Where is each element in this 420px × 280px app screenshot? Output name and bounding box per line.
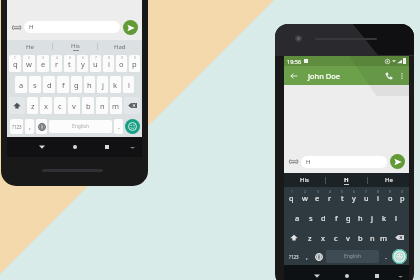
button[interactable]: ?123 [287,249,300,264]
button[interactable]: Back [311,265,323,280]
button[interactable]: v [68,97,80,114]
button[interactable]: Hide keyboard [126,137,138,157]
button[interactable]: l [123,76,134,93]
staticText: z [308,233,312,243]
button[interactable]: y [77,55,88,72]
button[interactable]: e [37,55,49,72]
button[interactable]: o [116,55,127,72]
button[interactable]: z [27,97,38,114]
staticText: 5 [341,190,343,194]
staticText: 2 [304,190,306,194]
button[interactable]: English [326,250,379,263]
button[interactable]: His [53,40,97,53]
button[interactable]: n [96,97,108,114]
button[interactable]: Home [341,265,353,280]
button[interactable]: w [23,55,35,72]
button[interactable]: q [9,55,21,72]
button[interactable]: H [24,21,120,33]
button[interactable]: s [29,76,41,93]
button[interactable]: q [286,189,297,206]
staticText: w [302,193,308,203]
button[interactable]: Home [69,137,81,157]
button[interactable]: Attach [11,22,22,33]
button[interactable]: p [129,55,140,72]
button[interactable]: o [385,189,395,206]
button[interactable]: f [331,209,341,226]
button[interactable]: c [330,229,341,246]
button[interactable]: Send [390,154,405,169]
button[interactable]: H [326,173,367,187]
button[interactable]: s [305,209,316,226]
button[interactable]: Emoji [313,249,324,264]
button[interactable]: y [349,189,359,206]
button[interactable]: He [7,40,52,53]
button[interactable]: Emoji [36,119,47,134]
button[interactable]: c [54,97,66,114]
button[interactable]: k [110,76,121,93]
button[interactable]: Hide keyboard [394,265,406,280]
button[interactable]: j [367,209,377,226]
button[interactable]: g [343,209,353,226]
button[interactable]: Shift [286,229,302,246]
button[interactable]: u [90,55,101,72]
button[interactable]: d [43,76,55,93]
button[interactable]: v [343,229,353,246]
button[interactable]: e [312,189,323,206]
button[interactable]: x [40,97,52,114]
staticText: 0 [134,56,136,60]
button[interactable]: z [304,229,315,246]
button[interactable]: Emoji keyboard [125,119,140,134]
button[interactable]: Attach [288,156,299,167]
button[interactable]: Backspace [391,229,407,246]
button[interactable]: Recents [101,137,113,157]
button[interactable]: x [317,229,328,246]
button[interactable]: English [49,120,112,133]
button[interactable]: h [355,209,365,226]
button[interactable]: k [379,209,389,226]
button[interactable]: u [361,189,371,206]
button[interactable]: Back [287,69,300,82]
button[interactable]: d [318,209,329,226]
button[interactable]: w [299,189,310,206]
button[interactable]: t [64,55,75,72]
button[interactable]: g [71,76,82,93]
button[interactable]: m [379,229,389,246]
staticText: e [315,193,320,203]
button[interactable]: p [397,189,407,206]
button[interactable]: Had [98,40,142,53]
button[interactable]: Shift [9,97,25,114]
button[interactable]: Send [123,20,138,35]
button[interactable]: Call [382,69,395,82]
button[interactable]: i [373,189,383,206]
button[interactable]: i [103,55,114,72]
button[interactable]: m [110,97,122,114]
button[interactable]: . [381,249,390,264]
button[interactable]: t [337,189,347,206]
button[interactable]: l [391,209,401,226]
button[interactable]: r [325,189,335,206]
button[interactable]: r [51,55,62,72]
button[interactable]: ?123 [10,119,23,134]
button[interactable]: , [25,119,34,134]
staticText: b [86,101,91,111]
button[interactable]: f [57,76,69,93]
button[interactable]: He [368,173,409,187]
button[interactable]: b [82,97,94,114]
button[interactable]: Emoji keyboard [392,249,407,264]
button[interactable]: a [292,209,303,226]
button[interactable]: h [84,76,95,93]
staticText: 19:56 [287,58,302,65]
button[interactable]: b [355,229,365,246]
button[interactable]: More options [396,70,407,81]
button[interactable]: n [367,229,377,246]
button[interactable]: His [284,173,325,187]
button[interactable]: Recents [371,265,383,280]
button[interactable]: Back [36,137,48,157]
button[interactable]: j [97,76,108,93]
button[interactable]: Backspace [124,97,140,114]
button[interactable]: , [302,249,311,264]
staticText: a [19,80,24,90]
button[interactable]: H [301,156,387,168]
button[interactable]: . [114,119,123,134]
button[interactable]: a [15,76,27,93]
